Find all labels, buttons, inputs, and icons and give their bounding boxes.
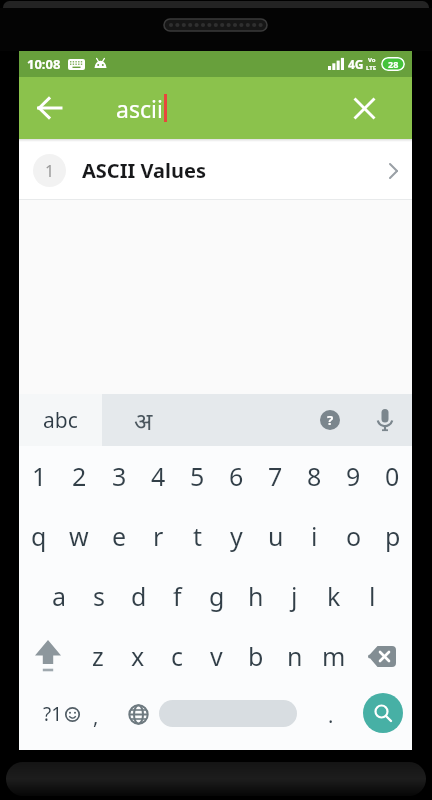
staticText: LTE <box>366 64 377 72</box>
button[interactable]: f <box>158 566 197 626</box>
staticText: 7 <box>268 459 283 493</box>
button[interactable]: अ <box>102 394 184 446</box>
staticText: n <box>287 639 303 673</box>
button[interactable]: 4 <box>139 446 178 506</box>
staticText: 6 <box>229 459 244 493</box>
button[interactable]: j <box>275 566 314 626</box>
button[interactable] <box>122 698 154 730</box>
button[interactable]: ? <box>320 410 340 430</box>
staticText: r <box>153 519 164 553</box>
button[interactable]: 7 <box>256 446 295 506</box>
button[interactable]: q <box>19 506 59 566</box>
staticText: w <box>69 519 89 553</box>
staticText: 8 <box>307 459 322 493</box>
button[interactable]: 8 <box>295 446 334 506</box>
staticText: z <box>92 639 104 673</box>
button[interactable]: e <box>99 506 139 566</box>
staticText: अ <box>134 404 153 437</box>
button[interactable]: b <box>236 626 275 686</box>
staticText: 1 <box>45 160 55 182</box>
button[interactable] <box>19 626 78 686</box>
button[interactable]: a <box>39 566 79 626</box>
staticText: u <box>268 519 284 553</box>
staticText: 9 <box>346 459 361 493</box>
button[interactable]: i <box>295 506 334 566</box>
staticText: 1 <box>32 459 47 493</box>
button[interactable]: n <box>275 626 314 686</box>
staticText: l <box>369 579 376 613</box>
staticText: i <box>311 519 318 553</box>
staticText: ASCII Values <box>82 157 206 184</box>
staticText: y <box>230 519 243 553</box>
button[interactable]: 9 <box>334 446 373 506</box>
staticText: 2 <box>72 459 87 493</box>
staticText: abc <box>43 406 78 435</box>
button[interactable]: 1 <box>19 446 59 506</box>
staticText: 4 <box>151 459 166 493</box>
button[interactable]: d <box>119 566 158 626</box>
staticText: 28 <box>388 58 399 70</box>
staticText: , <box>93 703 99 730</box>
staticText: q <box>31 519 47 553</box>
button[interactable] <box>33 91 67 125</box>
button[interactable] <box>159 700 297 727</box>
staticText: o <box>346 519 362 553</box>
staticText: j <box>291 579 298 613</box>
button[interactable]: ?1 <box>43 686 80 742</box>
staticText: x <box>131 639 145 673</box>
button[interactable]: abc <box>19 394 102 446</box>
button[interactable]: v <box>197 626 236 686</box>
button[interactable]: p <box>373 506 412 566</box>
button[interactable]: u <box>256 506 295 566</box>
button[interactable]: m <box>314 626 353 686</box>
staticText: m <box>322 639 346 673</box>
button[interactable]: o <box>334 506 373 566</box>
button[interactable]: w <box>59 506 99 566</box>
button[interactable]: s <box>79 566 119 626</box>
button[interactable]: x <box>118 626 158 686</box>
staticText: 0 <box>385 459 400 493</box>
staticText: s <box>93 579 105 613</box>
staticText: f <box>173 579 182 613</box>
staticText: g <box>209 579 225 613</box>
button[interactable]: t <box>178 506 217 566</box>
button[interactable]: h <box>236 566 275 626</box>
button[interactable] <box>353 626 412 686</box>
button[interactable]: 6 <box>217 446 256 506</box>
staticText: ? <box>327 411 334 429</box>
staticText: . <box>328 702 334 729</box>
staticText: 4G <box>348 56 364 72</box>
button[interactable] <box>374 409 396 431</box>
button[interactable]: 2 <box>59 446 99 506</box>
button[interactable]: l <box>353 566 392 626</box>
staticText: h <box>248 579 264 613</box>
staticText: 10:08 <box>27 55 61 73</box>
button[interactable]: 3 <box>99 446 139 506</box>
staticText: e <box>112 519 127 553</box>
staticText: p <box>385 519 401 553</box>
button[interactable]: 0 <box>373 446 412 506</box>
staticText: ascii <box>116 93 163 124</box>
button[interactable]: c <box>158 626 197 686</box>
button[interactable]: y <box>217 506 256 566</box>
staticText: k <box>327 579 341 613</box>
button[interactable] <box>347 91 381 125</box>
button[interactable]: g <box>197 566 236 626</box>
button[interactable]: 5 <box>178 446 217 506</box>
staticText: v <box>210 639 223 673</box>
staticText: a <box>52 579 67 613</box>
button[interactable]: z <box>78 626 118 686</box>
button[interactable]: 1 <box>19 139 412 200</box>
staticText: 5 <box>190 459 205 493</box>
staticText: c <box>171 639 184 673</box>
staticText: 3 <box>112 459 127 493</box>
staticText: t <box>193 519 203 553</box>
staticText: ?1 <box>43 701 63 727</box>
button[interactable]: r <box>139 506 178 566</box>
staticText: b <box>248 639 264 673</box>
button[interactable] <box>363 693 403 733</box>
button[interactable]: k <box>314 566 353 626</box>
staticText: d <box>131 579 147 613</box>
staticText: Vo <box>368 56 376 64</box>
